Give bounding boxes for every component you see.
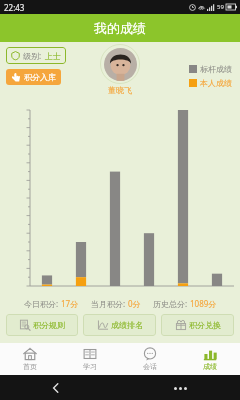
staticText: 历史总分: [153, 298, 188, 309]
button[interactable]: 首页 [0, 343, 60, 375]
staticText: 标杆成绩 [200, 64, 232, 74]
staticText: 本人成绩 [200, 78, 232, 88]
button[interactable]: 用户头像 [100, 44, 140, 84]
staticText: 17分 [61, 298, 79, 309]
staticText: 董晓飞 [108, 85, 132, 95]
staticText: 积分入库 [24, 72, 56, 82]
staticText: 59 [217, 3, 224, 11]
button[interactable]: 学习 [60, 343, 120, 375]
button[interactable]: 成绩排名 [83, 314, 156, 336]
button[interactable]: 返回 [46, 378, 66, 398]
staticText: 积分规则 [33, 320, 65, 330]
button[interactable]: 积分兑换 [161, 314, 234, 336]
staticText: 首页 [23, 362, 37, 371]
button[interactable]: 级别: [6, 47, 66, 64]
staticText: 1089分 [190, 298, 217, 309]
staticText: 0分 [128, 298, 141, 309]
staticText: 成绩排名 [111, 320, 143, 330]
button[interactable]: 积分入库 [6, 69, 61, 85]
staticText: 上士 [45, 51, 61, 61]
staticText: 我的成绩 [94, 20, 146, 36]
staticText: 当月积分: [91, 298, 126, 309]
staticText: 学习 [83, 362, 97, 371]
staticText: 级别: [23, 50, 42, 61]
button[interactable]: 会话 [120, 343, 180, 375]
staticText: 今日积分: [24, 298, 59, 309]
button[interactable]: 积分规则 [6, 314, 78, 336]
button[interactable]: 更多 [168, 376, 192, 400]
staticText: 会话 [143, 362, 157, 371]
button[interactable]: 成绩 [180, 343, 240, 375]
staticText: 积分兑换 [189, 320, 221, 330]
staticText: 成绩 [203, 362, 217, 371]
staticText: 22:43 [4, 2, 25, 13]
